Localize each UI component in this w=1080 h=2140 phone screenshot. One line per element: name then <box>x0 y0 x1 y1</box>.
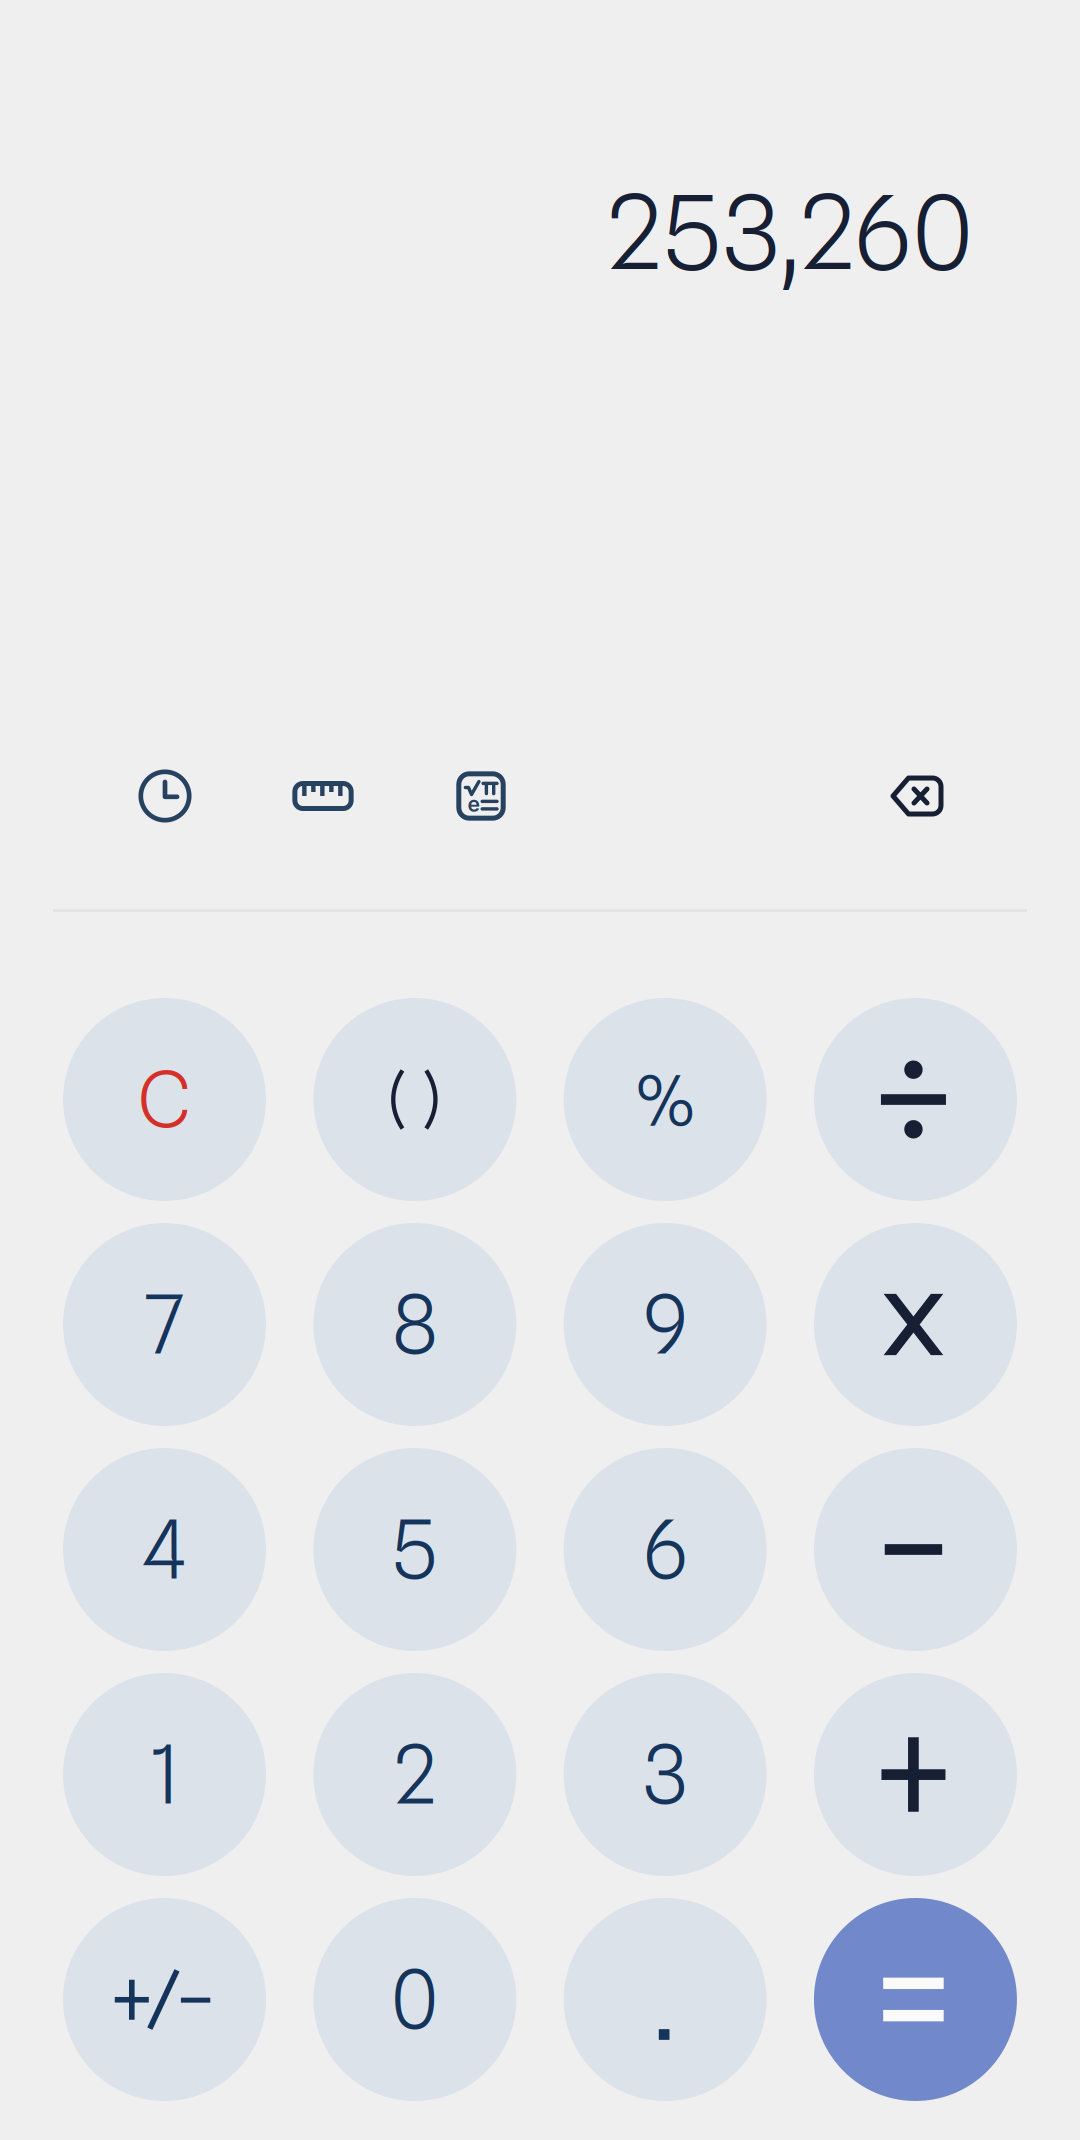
button[interactable]: 0 <box>313 1898 516 2101</box>
staticText: 2 <box>394 1726 436 1822</box>
button[interactable]: 8 <box>313 1223 516 1426</box>
button[interactable]: 9 <box>564 1223 767 1426</box>
staticText: 5 <box>393 1501 437 1597</box>
staticText: 1 <box>150 1726 179 1822</box>
staticText: e <box>467 791 480 817</box>
button[interactable]: Minus <box>814 1448 1017 1651</box>
button[interactable]: C <box>63 998 266 1201</box>
staticText: 9 <box>644 1276 687 1372</box>
button[interactable]: 5 <box>313 1448 516 1651</box>
button[interactable]: 4 <box>63 1448 266 1651</box>
button[interactable]: Multiply <box>814 1223 1017 1426</box>
button[interactable]: 7 <box>63 1223 266 1426</box>
staticText: 0 <box>391 1951 439 2047</box>
button[interactable]: 3 <box>564 1673 767 1876</box>
button[interactable]: 1 <box>63 1673 266 1876</box>
staticText: % <box>634 1059 696 1142</box>
staticText: 253,260 <box>607 170 973 293</box>
button[interactable]: Decimal point <box>564 1898 767 2101</box>
staticText: 8 <box>392 1276 437 1372</box>
button[interactable]: Equals <box>814 1898 1017 2101</box>
button[interactable]: Plus <box>814 1673 1017 1876</box>
button[interactable]: Parentheses <box>313 998 516 1201</box>
button[interactable]: Divide <box>814 998 1017 1201</box>
button[interactable]: % <box>564 998 767 1201</box>
staticText: C <box>138 1053 191 1146</box>
button[interactable]: 6 <box>564 1448 767 1651</box>
staticText: 6 <box>644 1501 687 1597</box>
staticText: 7 <box>145 1276 185 1372</box>
button[interactable]: 2 <box>313 1673 516 1876</box>
button[interactable]: Delete <box>862 765 972 827</box>
button[interactable]: Scientific mode <box>402 765 560 827</box>
button[interactable]: Plus or minus <box>63 1898 266 2101</box>
staticText: 4 <box>143 1501 186 1597</box>
button[interactable]: Unit converter <box>244 765 402 827</box>
button[interactable]: History <box>86 765 244 827</box>
staticText: 3 <box>643 1726 687 1822</box>
